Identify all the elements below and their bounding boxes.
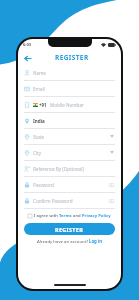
staticText: Reference By (Optional) bbox=[33, 166, 115, 172]
staticText: Mobile Number bbox=[50, 102, 115, 108]
button[interactable]: REGISTER bbox=[24, 223, 115, 235]
button[interactable]: Reference By (Optional) bbox=[24, 161, 115, 177]
staticText: 6:03 bbox=[23, 42, 31, 47]
staticText: REGISTER bbox=[55, 53, 89, 62]
button[interactable]: India bbox=[24, 113, 115, 129]
button[interactable]: +91 bbox=[24, 97, 115, 113]
staticText: Email bbox=[33, 86, 115, 92]
staticText: REGISTER bbox=[55, 226, 84, 233]
staticText: Already have an account? bbox=[37, 238, 89, 244]
button[interactable]: Confirm Password bbox=[24, 193, 115, 209]
button[interactable]: Name bbox=[24, 65, 115, 81]
staticText: City bbox=[33, 150, 110, 156]
button[interactable]: Back bbox=[21, 52, 33, 64]
staticText: +91 bbox=[39, 102, 47, 108]
staticText: Password bbox=[33, 182, 109, 188]
staticText: India bbox=[33, 118, 115, 124]
button[interactable]: I agree with bbox=[24, 211, 115, 221]
button[interactable]: Email bbox=[24, 81, 115, 97]
staticText: Confirm Password bbox=[33, 198, 109, 204]
button[interactable]: City bbox=[24, 145, 115, 161]
button[interactable]: Password bbox=[24, 177, 115, 193]
staticText: and bbox=[72, 213, 82, 219]
button[interactable]: Log in bbox=[89, 238, 102, 244]
staticText: Name bbox=[33, 70, 115, 76]
staticText: State bbox=[33, 134, 110, 140]
button[interactable]: State bbox=[24, 129, 115, 145]
staticText: I agree with bbox=[34, 213, 59, 219]
button[interactable]: Terms bbox=[59, 213, 72, 219]
button[interactable]: Privacy Policy bbox=[82, 213, 111, 219]
